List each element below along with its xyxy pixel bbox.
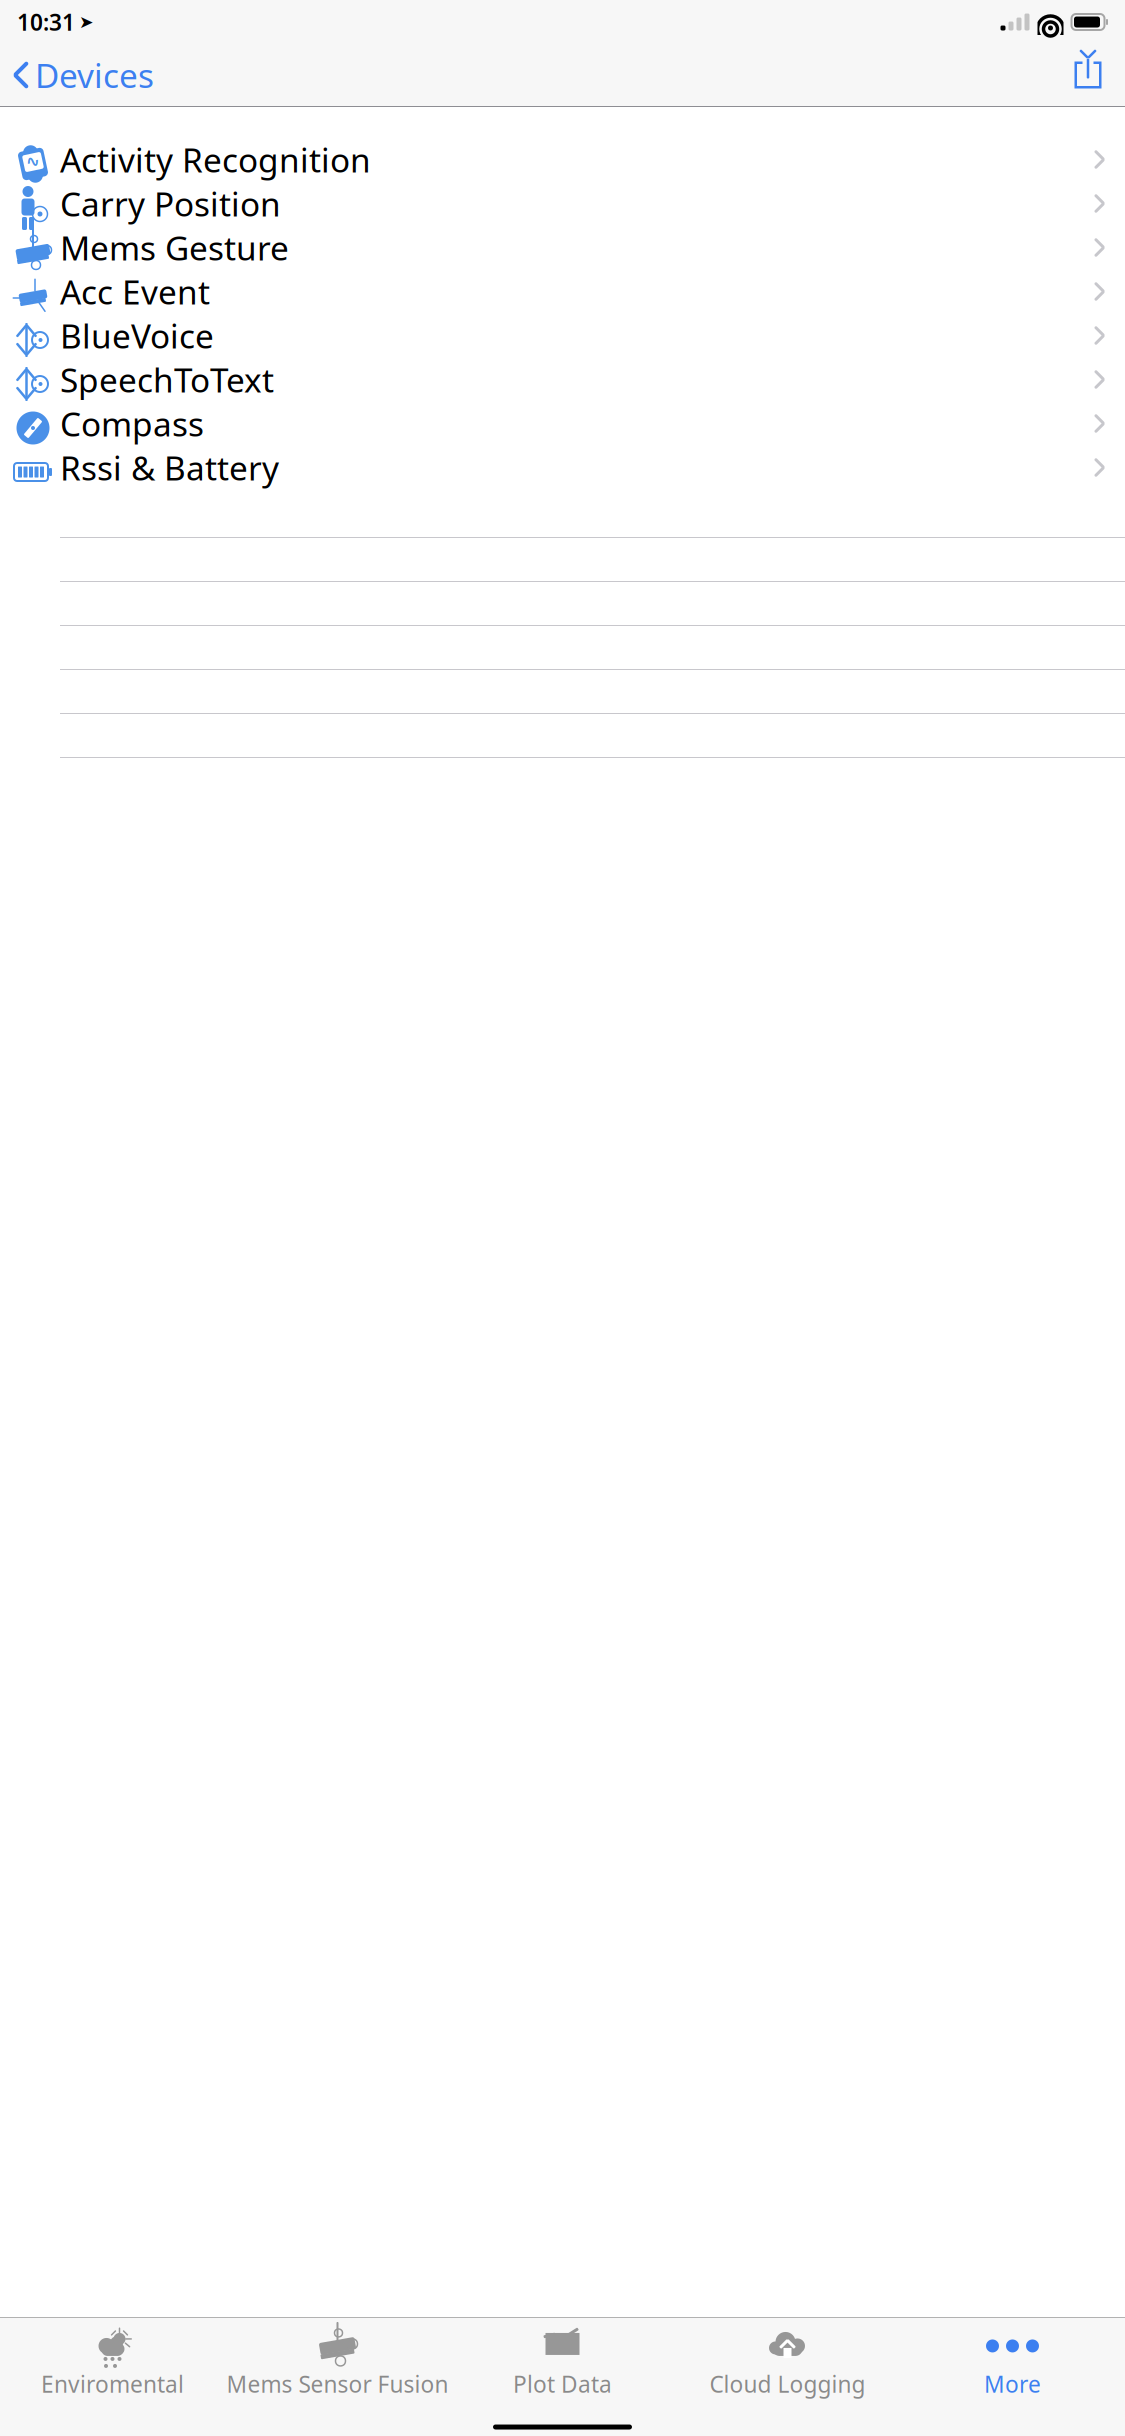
staticText: Acc Event bbox=[60, 269, 210, 314]
staticText: Cloud Logging bbox=[709, 2369, 865, 2399]
staticText: Plot Data bbox=[513, 2369, 612, 2399]
button[interactable]: BlueVoice bbox=[0, 318, 1125, 362]
button[interactable]: ∿ bbox=[0, 142, 1125, 186]
staticText: ➤ bbox=[79, 12, 94, 32]
button[interactable]: Devices bbox=[0, 45, 154, 105]
staticText: Activity Recognition bbox=[60, 137, 371, 182]
button[interactable]: Acc Event bbox=[0, 274, 1125, 318]
staticText: Rssi & Battery bbox=[60, 445, 279, 490]
button[interactable]: Share bbox=[1057, 52, 1119, 98]
staticText: Mems Gesture bbox=[60, 225, 289, 270]
staticText: Mems Sensor Fusion bbox=[226, 2369, 448, 2399]
staticText: More bbox=[984, 2369, 1041, 2399]
staticText: SpeechToText bbox=[60, 357, 274, 402]
button[interactable]: Carry Position bbox=[0, 186, 1125, 230]
staticText: 10:31 bbox=[17, 7, 75, 37]
button[interactable]: Enviromental bbox=[0, 2317, 225, 2403]
staticText: BlueVoice bbox=[60, 313, 214, 358]
button[interactable]: Mems Sensor Fusion bbox=[225, 2317, 450, 2403]
button[interactable]: Plot Data bbox=[450, 2317, 675, 2403]
button[interactable]: Cloud Logging bbox=[675, 2317, 900, 2403]
button[interactable]: Mems Gesture bbox=[0, 230, 1125, 274]
staticText: Enviromental bbox=[41, 2369, 184, 2399]
staticText: Compass bbox=[60, 401, 204, 446]
button[interactable]: More bbox=[900, 2317, 1125, 2403]
staticText: Devices bbox=[35, 53, 154, 97]
staticText: Carry Position bbox=[60, 181, 281, 226]
staticText: ∿ bbox=[25, 151, 40, 171]
button[interactable]: Compass bbox=[0, 406, 1125, 450]
button[interactable]: Rssi & Battery bbox=[0, 450, 1125, 494]
button[interactable]: SpeechToText bbox=[0, 362, 1125, 406]
